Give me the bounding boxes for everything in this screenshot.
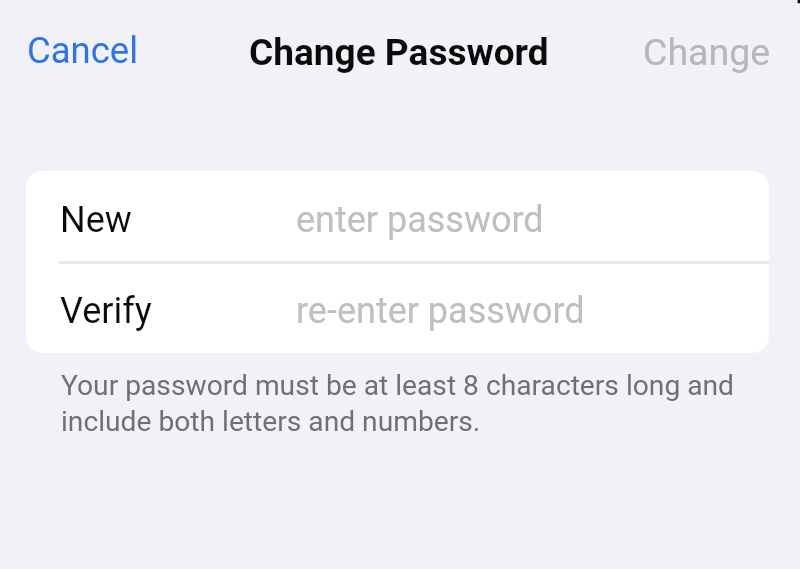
staticText: Change Password xyxy=(249,31,549,74)
staticText: Your password must be at least 8 charact… xyxy=(61,369,761,438)
staticText: re-enter password xyxy=(296,290,585,332)
button[interactable]: Verify password field, re-enter password xyxy=(26,262,769,353)
button[interactable]: Change xyxy=(624,11,790,93)
staticText: Cancel xyxy=(27,29,139,72)
staticText: enter password xyxy=(296,199,544,241)
staticText: Verify xyxy=(60,290,152,332)
button[interactable]: New password field, enter password xyxy=(26,171,769,262)
staticText: New xyxy=(60,199,132,241)
button[interactable]: Cancel xyxy=(8,10,158,91)
staticText: Change xyxy=(643,30,771,74)
